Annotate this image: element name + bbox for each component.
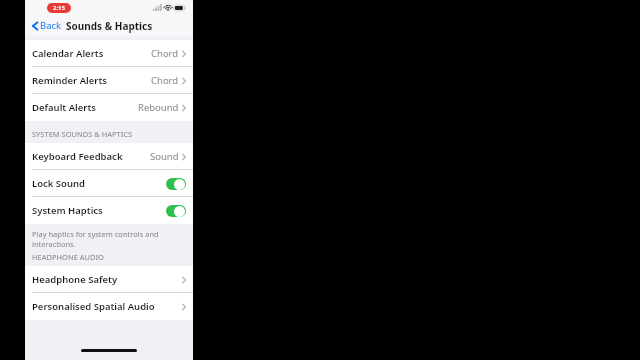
- staticText: Headphone Safety: [32, 273, 118, 286]
- staticText: Chord: [151, 74, 179, 87]
- button[interactable]: Calendar Alerts: [25, 40, 193, 67]
- staticText: SYSTEM SOUNDS & HAPTICS: [32, 129, 133, 139]
- button[interactable]: Lock Sound: [25, 170, 193, 197]
- button[interactable]: Headphone Safety: [25, 266, 193, 293]
- staticText: Back: [40, 19, 62, 32]
- button[interactable]: Personalised Spatial Audio: [25, 293, 193, 320]
- staticText: Personalised Spatial Audio: [32, 300, 155, 313]
- button[interactable]: Reminder Alerts: [25, 67, 193, 94]
- staticText: System Haptics: [32, 204, 103, 217]
- staticText: HEADPHONE AUDIO: [32, 252, 104, 262]
- button[interactable]: Toggle on: [166, 178, 186, 190]
- staticText: Calendar Alerts: [32, 47, 104, 60]
- staticText: Keyboard Feedback: [32, 150, 123, 163]
- staticText: Chord: [151, 47, 179, 60]
- staticText: 2:15: [53, 4, 65, 12]
- staticText: Sounds & Haptics: [66, 19, 153, 33]
- staticText: Default Alerts: [32, 101, 96, 114]
- staticText: Play haptics for system controls and int…: [32, 229, 159, 249]
- staticText: Reminder Alerts: [32, 74, 107, 87]
- button[interactable]: Back: [30, 16, 64, 35]
- staticText: Lock Sound: [32, 177, 86, 190]
- button[interactable]: Keyboard Feedback: [25, 143, 193, 170]
- button[interactable]: System Haptics: [25, 197, 193, 224]
- staticText: Rebound: [138, 101, 179, 114]
- staticText: Sound: [150, 150, 179, 163]
- button[interactable]: Toggle on: [166, 205, 186, 217]
- button[interactable]: Default Alerts: [25, 94, 193, 121]
